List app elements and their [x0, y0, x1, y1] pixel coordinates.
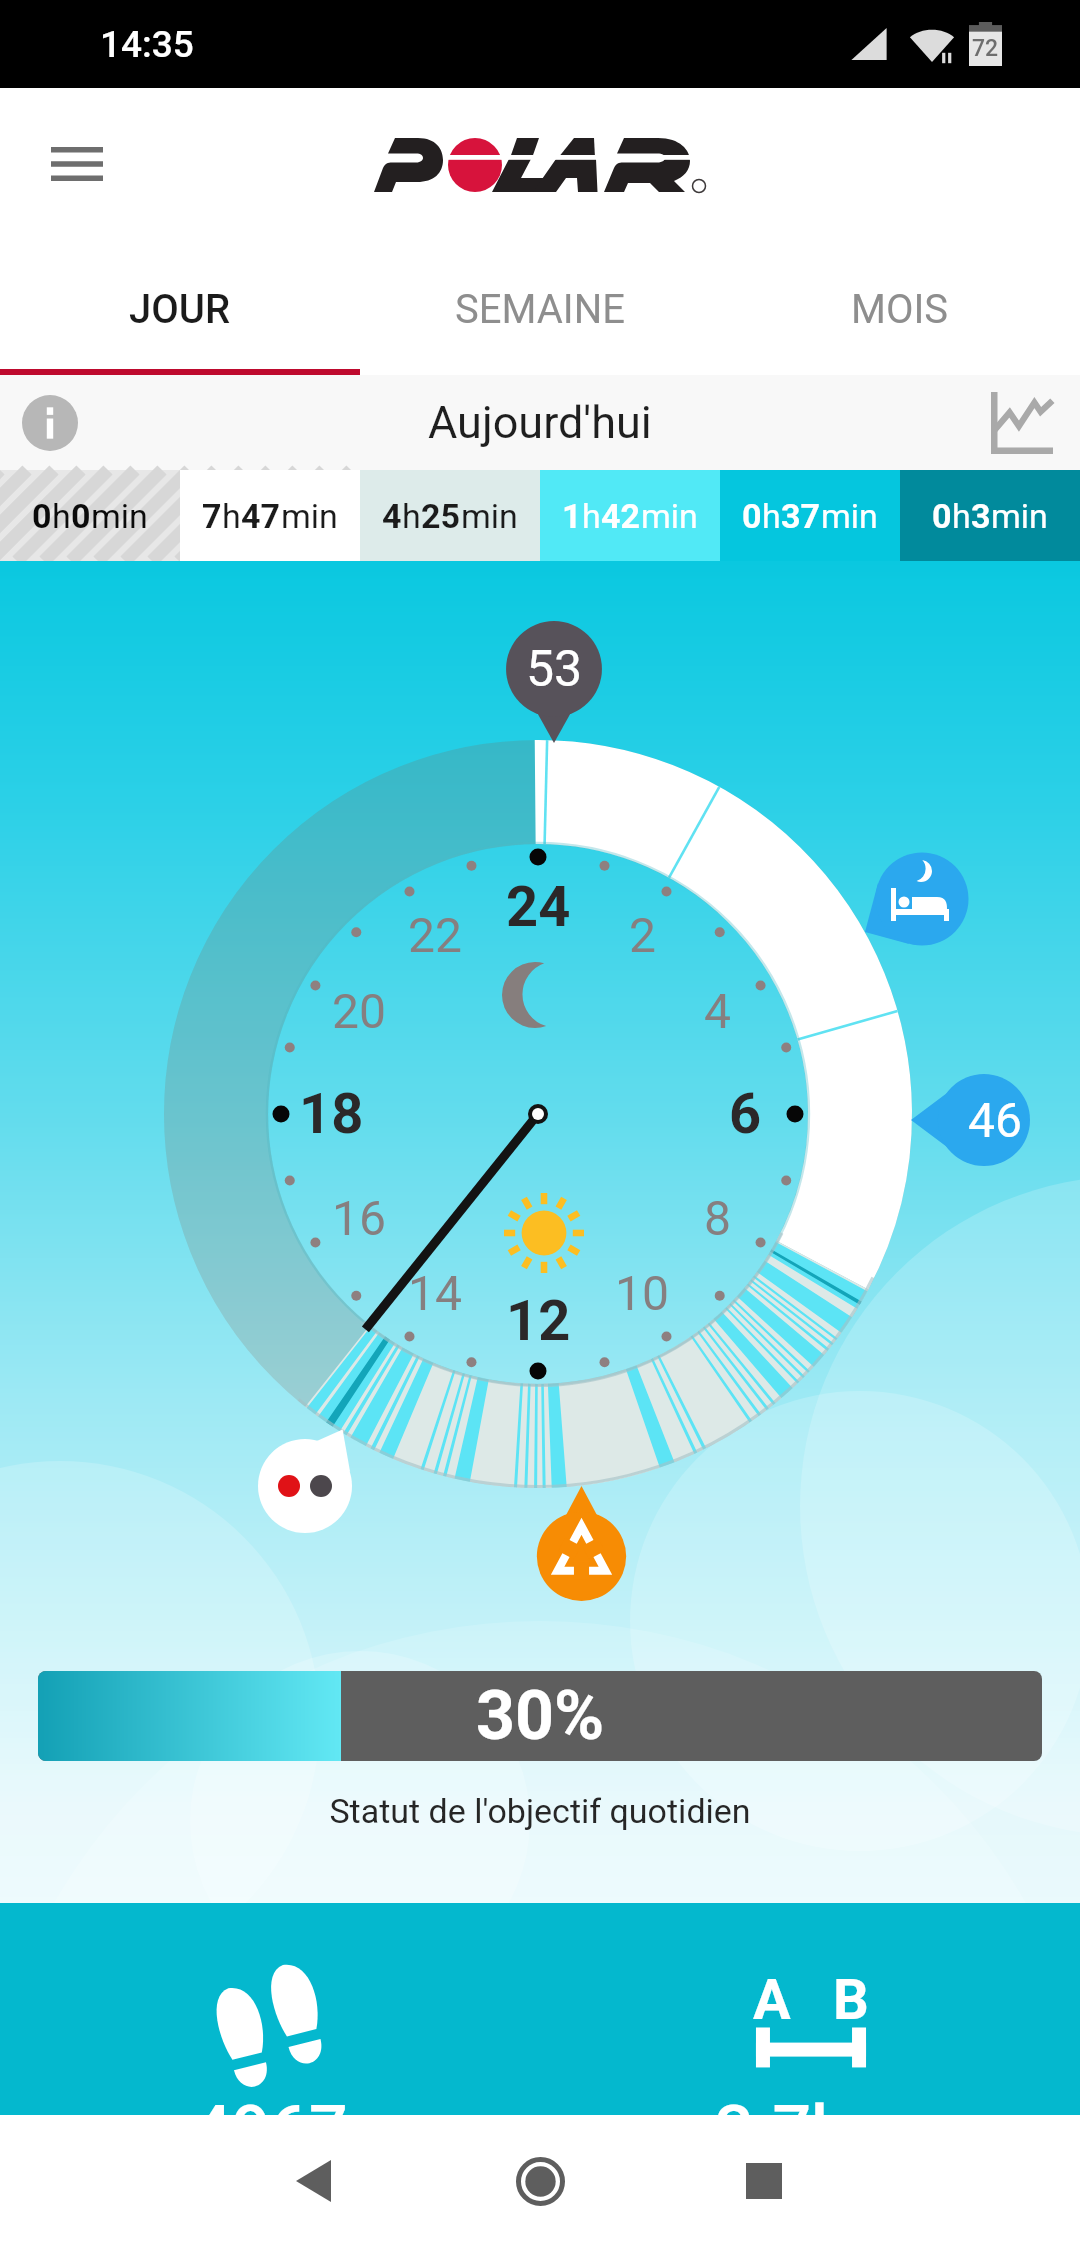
staticText: min	[91, 496, 148, 536]
button[interactable]: Recent apps	[704, 2121, 824, 2241]
staticText: 53	[526, 640, 583, 699]
staticText: 1	[562, 496, 582, 536]
staticText: 0	[32, 496, 52, 536]
button[interactable]: JOUR	[0, 274, 360, 369]
staticText: MOIS	[851, 286, 949, 333]
staticText: 24	[506, 874, 571, 940]
staticText: A	[753, 1967, 791, 2033]
button[interactable]: Sleep score 53	[503, 619, 605, 744]
staticText: Statut de l'objectif quotidien	[0, 1791, 1080, 1831]
staticText: 4	[704, 983, 731, 1039]
staticText: B	[833, 1967, 869, 2033]
staticText: 22	[408, 907, 462, 963]
staticText: 2	[629, 907, 656, 963]
button[interactable]: 4	[360, 470, 540, 561]
staticText: 30%	[476, 1676, 605, 1756]
button[interactable]: 0	[900, 470, 1080, 561]
button[interactable]: Inactivity alert	[534, 1485, 629, 1603]
staticText: h	[402, 496, 421, 536]
button[interactable]: Back	[253, 2121, 373, 2241]
staticText: 7	[202, 496, 222, 536]
button[interactable]: SEMAINE	[360, 274, 720, 369]
staticText: 14	[408, 1265, 462, 1321]
button[interactable]: Info	[8, 381, 92, 465]
staticText: 8	[704, 1190, 731, 1246]
button[interactable]: Sleep continuity 46	[911, 1073, 1030, 1167]
staticText: 0	[71, 496, 91, 536]
staticText: JOUR	[129, 286, 231, 333]
staticText: 18	[299, 1081, 364, 1147]
button[interactable]: Charts	[980, 381, 1064, 465]
staticText: 47	[241, 496, 281, 536]
staticText: 4967	[193, 2091, 348, 2171]
staticText: min	[821, 496, 878, 536]
staticText: min	[641, 496, 698, 536]
staticText: 20	[332, 983, 386, 1039]
staticText: 42	[601, 496, 641, 536]
staticText: h	[582, 496, 601, 536]
staticText: 6	[729, 1081, 762, 1147]
button[interactable]: 30%	[38, 1671, 1042, 1761]
staticText: 25	[421, 496, 461, 536]
staticText: 0	[932, 496, 952, 536]
button[interactable]: 0	[0, 470, 180, 561]
staticText: SEMAINE	[455, 286, 625, 333]
button[interactable]: Sleep	[858, 835, 986, 963]
staticText: h	[52, 496, 71, 536]
button[interactable]: 7	[180, 470, 360, 561]
staticText: 3	[971, 496, 991, 536]
staticText: 14:35	[100, 23, 194, 66]
staticText: 46	[968, 1092, 1022, 1148]
staticText: 72	[972, 35, 999, 62]
button[interactable]: 0	[720, 470, 900, 561]
staticText: 37	[781, 496, 821, 536]
staticText: h	[952, 496, 971, 536]
button[interactable]: Activity markers	[256, 1427, 356, 1533]
staticText: 12	[506, 1288, 571, 1354]
staticText: h	[762, 496, 781, 536]
button[interactable]: Steps 4967	[0, 1903, 540, 2115]
button[interactable]: 1	[540, 470, 720, 561]
staticText: 0	[742, 496, 762, 536]
staticText: 10	[615, 1265, 669, 1321]
staticText: 4	[382, 496, 402, 536]
staticText: h	[222, 496, 241, 536]
staticText: 16	[332, 1190, 386, 1246]
button[interactable]: MOIS	[720, 274, 1080, 369]
button[interactable]: Distance 3.7 km	[540, 1903, 1080, 2115]
button[interactable]: Home	[480, 2121, 600, 2241]
staticText: min	[461, 496, 518, 536]
staticText: Aujourd'hui	[428, 396, 652, 449]
button[interactable]: Menu	[38, 125, 116, 203]
staticText: 3.7km	[715, 2091, 906, 2171]
staticText: min	[281, 496, 338, 536]
staticText: min	[991, 496, 1048, 536]
